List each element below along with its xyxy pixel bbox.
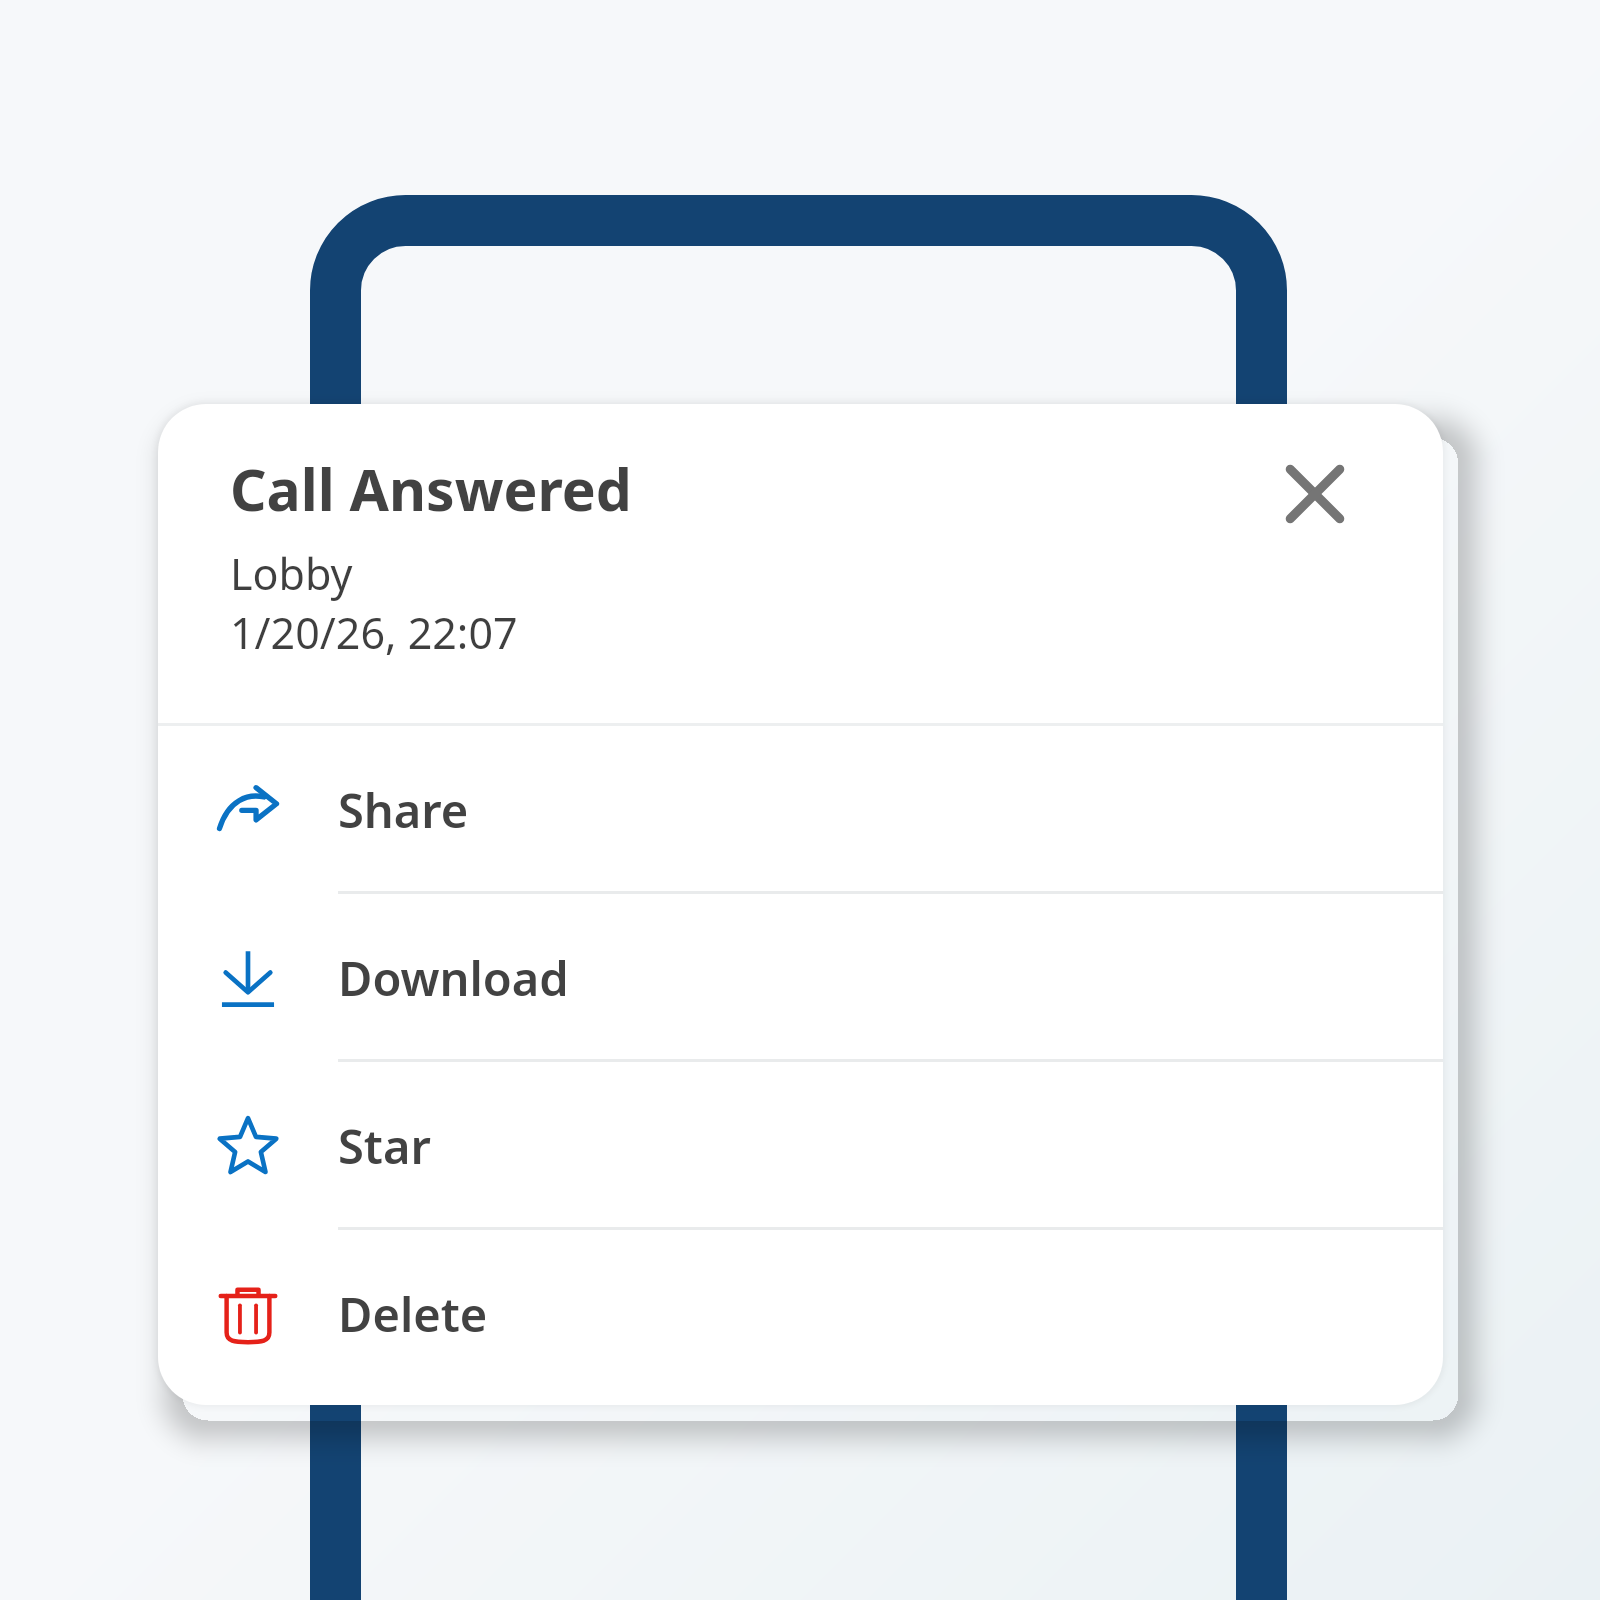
staticText: 1/20/26, 22:07 <box>230 603 518 662</box>
button[interactable]: Close <box>1267 446 1363 542</box>
staticText: Delete <box>338 1282 488 1346</box>
button[interactable]: Download <box>158 894 1443 1062</box>
staticText: Download <box>338 946 569 1010</box>
staticText: Star <box>338 1114 431 1178</box>
staticText: Share <box>338 778 469 842</box>
staticText: Lobby <box>230 544 353 603</box>
button[interactable]: Delete <box>158 1230 1443 1398</box>
button[interactable]: Star <box>158 1062 1443 1230</box>
button[interactable]: Share <box>158 726 1443 894</box>
staticText: Call Answered <box>230 450 632 528</box>
